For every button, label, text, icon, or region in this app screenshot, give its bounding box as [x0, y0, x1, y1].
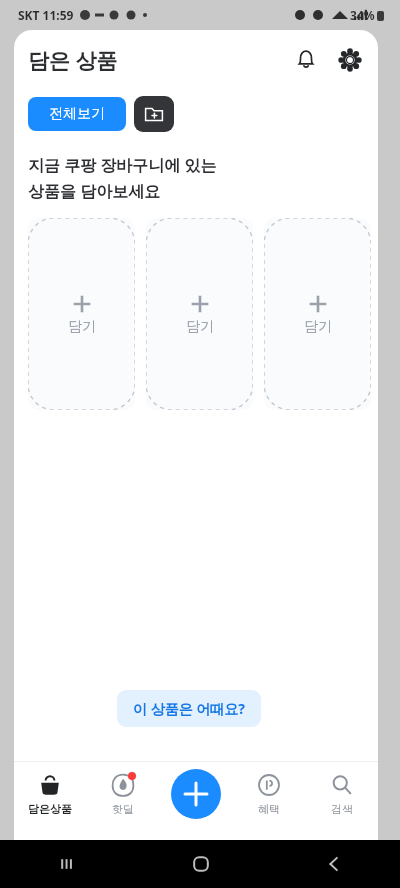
button[interactable]: 담기: [146, 218, 253, 410]
staticText: 담은 상품: [28, 46, 118, 75]
button[interactable]: 혜택: [232, 762, 305, 816]
staticText: 담은상품: [28, 802, 72, 816]
button[interactable]: 담기: [264, 218, 371, 410]
button[interactable]: Settings: [332, 42, 368, 78]
staticText: 34%: [350, 7, 375, 23]
button[interactable]: 이 상품은 어때요?: [117, 690, 261, 727]
staticText: 검색: [331, 802, 353, 816]
staticText: 담기: [304, 318, 332, 336]
staticText: 이 상품은 어때요?: [133, 699, 245, 718]
button[interactable]: Notifications: [288, 42, 324, 78]
staticText: 전체보기: [49, 105, 105, 123]
staticText: 지금 쿠팡 장바구니에 있는: [28, 154, 217, 176]
button[interactable]: 검색: [305, 762, 378, 816]
staticText: 담기: [68, 318, 96, 336]
button[interactable]: Add: [171, 769, 221, 819]
staticText: SKT 11:59: [18, 7, 74, 23]
staticText: 상품을 담아보세요: [28, 180, 161, 202]
button[interactable]: 담기: [28, 218, 135, 410]
staticText: 핫딜: [112, 802, 134, 816]
button[interactable]: New folder: [134, 96, 174, 132]
button[interactable]: 핫딜: [86, 762, 159, 816]
staticText: 담기: [186, 318, 214, 336]
staticText: 혜택: [258, 802, 280, 816]
button[interactable]: 담은상품: [14, 762, 86, 816]
button[interactable]: 전체보기: [28, 97, 126, 131]
